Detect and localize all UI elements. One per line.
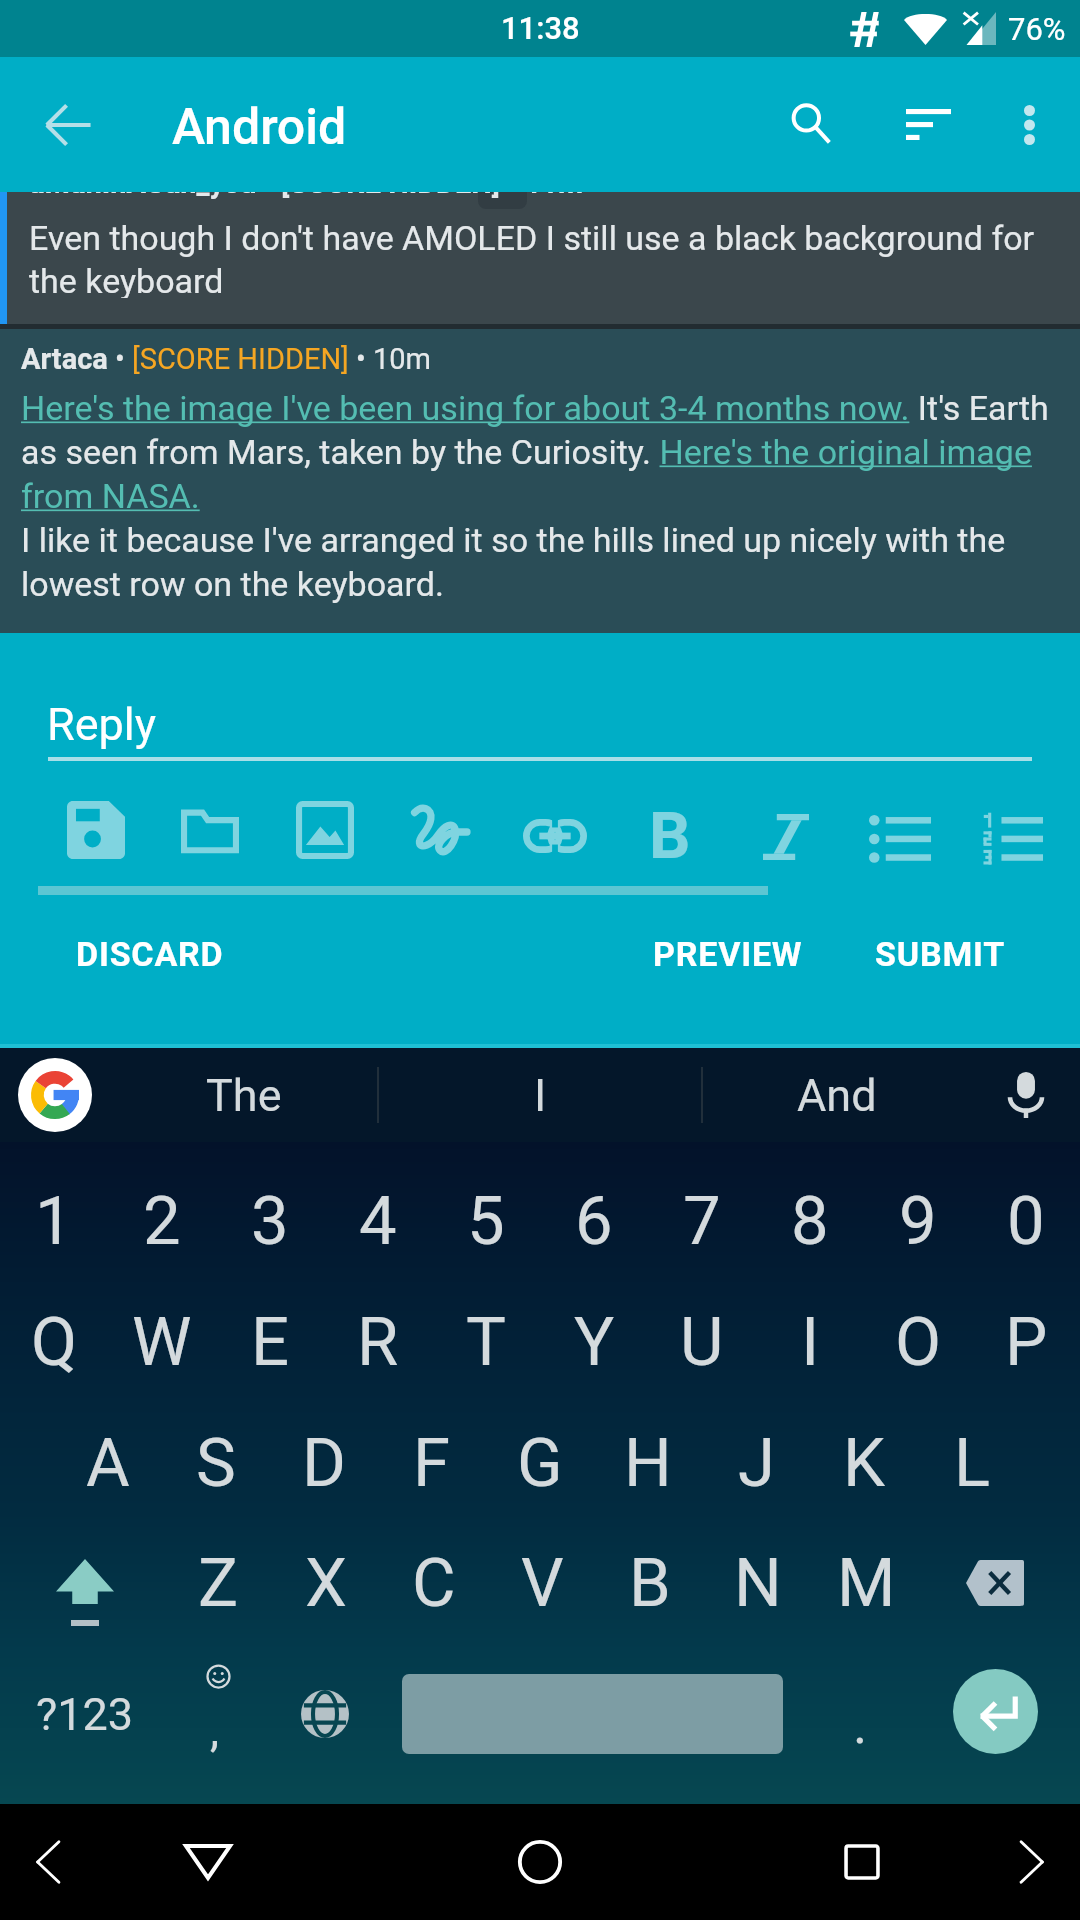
staticText: Even though I don't have AMOLED I still … — [29, 218, 1056, 298]
button[interactable]: Next — [984, 1804, 1080, 1920]
button[interactable]: W — [108, 1282, 216, 1402]
button[interactable]: J — [702, 1403, 810, 1523]
button[interactable]: L — [918, 1403, 1026, 1523]
button[interactable]: aManInACan_you • [SCORE HIDDEN] • 11m — [0, 192, 1080, 324]
button[interactable]: Previous — [0, 1804, 96, 1920]
staticText: . — [853, 1693, 868, 1756]
staticText: Q — [31, 1303, 78, 1382]
button[interactable]: Enter — [930, 1632, 1060, 1791]
button[interactable]: T — [432, 1282, 540, 1402]
staticText: P — [1005, 1303, 1048, 1382]
button[interactable]: Draw — [382, 789, 498, 875]
button[interactable]: SUBMIT — [860, 922, 1020, 986]
button[interactable]: P — [972, 1282, 1080, 1402]
button[interactable]: PREVIEW — [638, 922, 818, 986]
staticText: J — [738, 1424, 775, 1503]
staticText: PREVIEW — [653, 934, 803, 974]
button[interactable]: DISCARD — [50, 922, 250, 986]
button[interactable]: H — [594, 1403, 702, 1523]
button[interactable]: 8 — [756, 1161, 864, 1281]
button[interactable]: Insert image — [267, 787, 383, 873]
button[interactable]: 7 — [648, 1161, 756, 1281]
button[interactable]: Sort — [870, 57, 986, 192]
button[interactable]: I — [756, 1282, 864, 1402]
staticText: H — [624, 1424, 672, 1503]
staticText: G — [517, 1424, 563, 1503]
button[interactable]: R — [324, 1282, 432, 1402]
button[interactable]: B — [596, 1523, 704, 1643]
button[interactable]: Period — [806, 1645, 914, 1804]
button[interactable]: I — [379, 1048, 701, 1142]
staticText: 7 — [683, 1182, 721, 1261]
button[interactable]: And — [703, 1048, 971, 1142]
button[interactable]: Z — [164, 1523, 272, 1643]
staticText: K — [843, 1424, 886, 1503]
button[interactable]: Back — [8, 57, 128, 192]
staticText: C — [412, 1544, 456, 1623]
staticText: 9 — [899, 1182, 937, 1261]
staticText: 2 — [143, 1182, 181, 1261]
staticText: Android — [172, 98, 347, 157]
button[interactable]: X — [272, 1523, 380, 1643]
button[interactable]: 5 — [432, 1161, 540, 1281]
button[interactable]: More options — [986, 57, 1072, 192]
button[interactable]: S — [162, 1403, 270, 1523]
button[interactable]: Insert link — [497, 793, 613, 879]
button[interactable]: V — [488, 1523, 596, 1643]
button[interactable]: Artaca • [SCORE HIDDEN] • 10m — [0, 329, 1080, 633]
button[interactable]: Google Assistant — [18, 1058, 92, 1132]
button[interactable]: O — [864, 1282, 972, 1402]
button[interactable]: E — [216, 1282, 324, 1402]
button[interactable]: D — [270, 1403, 378, 1523]
button[interactable]: 4 — [324, 1161, 432, 1281]
staticText: B — [629, 1544, 671, 1623]
staticText: , — [210, 1703, 220, 1757]
staticText: S — [196, 1424, 236, 1503]
button[interactable]: Space — [384, 1669, 800, 1759]
staticText: 4 — [359, 1182, 397, 1261]
button[interactable]: Italic — [728, 794, 844, 880]
staticText: L — [954, 1424, 991, 1503]
staticText: ?123 — [36, 1688, 134, 1741]
button[interactable]: Load draft — [152, 787, 268, 873]
button[interactable]: C — [380, 1523, 488, 1643]
button[interactable]: K — [810, 1403, 918, 1523]
button[interactable]: G — [486, 1403, 594, 1523]
button[interactable]: Comma and emoji — [164, 1645, 272, 1804]
button[interactable]: Home — [484, 1804, 596, 1920]
button[interactable]: 3 — [216, 1161, 324, 1281]
button[interactable]: 6 — [540, 1161, 648, 1281]
staticText: M — [837, 1544, 896, 1623]
button[interactable]: Search — [756, 57, 866, 192]
button[interactable]: Save draft — [38, 787, 154, 873]
staticText: 1 — [35, 1182, 73, 1261]
button[interactable]: Shift — [31, 1523, 139, 1643]
button[interactable]: ?123 — [20, 1635, 150, 1794]
button[interactable]: F — [378, 1403, 486, 1523]
button[interactable]: 1 — [0, 1161, 108, 1281]
button[interactable]: Hide keyboard — [152, 1804, 264, 1920]
staticText: Reply — [47, 698, 157, 751]
button[interactable]: M — [812, 1523, 920, 1643]
button[interactable]: The — [110, 1048, 378, 1142]
button[interactable]: U — [648, 1282, 756, 1402]
button[interactable]: Voice input — [975, 1048, 1077, 1142]
button[interactable]: Q — [0, 1282, 108, 1402]
button[interactable]: A — [54, 1403, 162, 1523]
button[interactable]: Backspace — [930, 1523, 1060, 1643]
button[interactable]: Bulleted list — [842, 797, 958, 883]
button[interactable]: Change language — [272, 1634, 378, 1793]
button[interactable]: 2 — [108, 1161, 216, 1281]
button[interactable]: Recents — [806, 1804, 918, 1920]
staticText: 5 — [467, 1182, 505, 1261]
button[interactable]: Bold — [612, 793, 728, 879]
staticText: Z — [198, 1544, 239, 1623]
staticText: Y — [574, 1303, 615, 1382]
staticText: 76% — [1008, 11, 1066, 47]
button[interactable]: 9 — [864, 1161, 972, 1281]
button[interactable]: 0 — [972, 1161, 1080, 1281]
button[interactable]: N — [704, 1523, 812, 1643]
button[interactable]: Numbered list — [954, 797, 1070, 883]
staticText: SUBMIT — [875, 934, 1006, 974]
button[interactable]: Y — [540, 1282, 648, 1402]
